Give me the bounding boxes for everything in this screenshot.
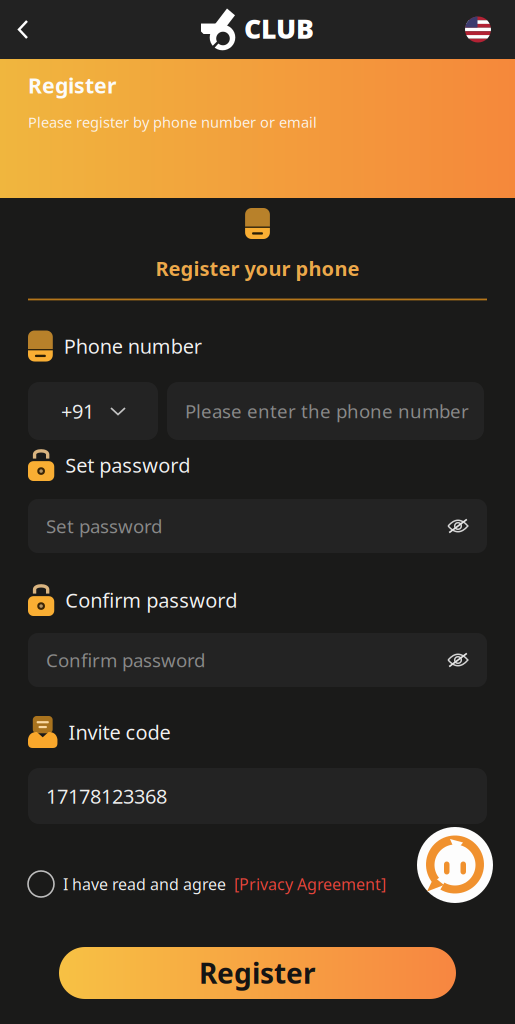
staticText: Confirm password — [65, 587, 237, 613]
button[interactable]: Register — [59, 947, 456, 999]
staticText: Set password — [65, 452, 190, 478]
staticText: Please register by phone number or email — [28, 112, 317, 132]
staticText: Please enter the phone number — [185, 399, 469, 423]
staticText: +91 — [61, 398, 94, 424]
button[interactable]: Customer support — [417, 827, 493, 903]
staticText: Register your phone — [155, 255, 359, 282]
button[interactable]: Agree to terms — [28, 871, 54, 897]
button[interactable]: Set password — [28, 499, 487, 553]
button[interactable]: Confirm password — [28, 633, 487, 687]
staticText: CLUB — [244, 11, 314, 46]
button[interactable]: 17178123368 — [28, 768, 487, 824]
staticText: Set password — [46, 514, 162, 538]
button[interactable]: [Privacy Agreement] — [226, 873, 386, 895]
button[interactable]: Back — [0, 0, 46, 59]
staticText: 17178123368 — [46, 783, 167, 809]
staticText: Confirm password — [46, 648, 205, 672]
staticText: Phone number — [64, 333, 202, 359]
staticText: Register — [199, 954, 316, 992]
button[interactable]: Language — [441, 0, 515, 59]
staticText: [Privacy Agreement] — [234, 873, 386, 895]
button[interactable]: +91 — [28, 382, 158, 440]
staticText: I have read and agree — [63, 873, 226, 895]
staticText: Register — [28, 71, 117, 99]
staticText: Invite code — [68, 719, 170, 745]
button[interactable]: Please enter the phone number — [167, 382, 484, 440]
